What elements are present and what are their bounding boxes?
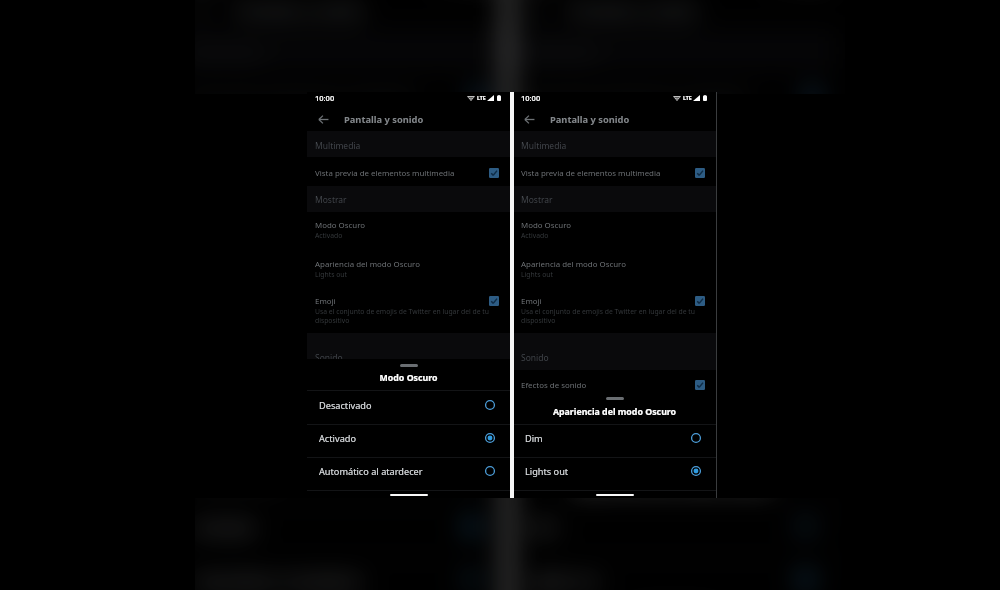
button[interactable]: Back — [314, 110, 332, 128]
button[interactable] — [513, 250, 716, 289]
button[interactable]: Activado — [307, 422, 510, 454]
staticText: Lights out — [521, 270, 553, 279]
staticText: Usa el conjunto de emojis de Twitter en … — [315, 307, 489, 325]
staticText: Efectos de sonido — [521, 380, 587, 391]
other: Enabled — [695, 296, 705, 306]
staticText: Pantalla y sonido — [550, 113, 630, 126]
staticText: Apariencia del modo Oscuro — [315, 259, 420, 270]
staticText: Dim — [528, 517, 797, 538]
other: Enabled — [489, 168, 499, 178]
staticText: Mostrar — [315, 194, 347, 206]
staticText: Lights out — [525, 465, 691, 478]
staticText: Activado — [195, 517, 464, 538]
button[interactable] — [513, 370, 716, 398]
staticText: Apariencia del modo Oscuro — [521, 259, 626, 270]
staticText: Efectos de sonido — [522, 433, 629, 450]
staticText: 10:00 — [315, 93, 335, 103]
staticText: Activado — [521, 231, 549, 240]
staticText: Modo Oscuro — [307, 372, 510, 384]
other: Enabled — [489, 296, 499, 306]
other: Enabled — [695, 168, 705, 178]
staticText: LTE — [683, 94, 692, 101]
staticText: Apariencia del modo Oscuro — [509, 475, 838, 494]
staticText: Activado — [522, 191, 567, 206]
button[interactable] — [513, 211, 716, 250]
staticText: Emoji — [315, 296, 336, 307]
staticText: Modo Oscuro — [521, 220, 572, 231]
staticText: 10:00 — [521, 93, 541, 103]
staticText: Dim — [525, 432, 691, 445]
staticText: Mostrar — [522, 131, 574, 151]
button[interactable] — [307, 289, 510, 333]
staticText: Pantalla y sonido — [344, 113, 424, 126]
staticText: Usa el conjunto de emojis de Twitter en … — [521, 307, 695, 325]
staticText: Multimedia — [315, 140, 361, 152]
staticText: Vista previa de elementos multimedia — [315, 168, 455, 179]
staticText: Emoji — [522, 297, 556, 314]
staticText: Activado — [319, 432, 485, 445]
button[interactable]: Automático al atardecer — [307, 455, 510, 487]
button[interactable]: Lights out — [513, 455, 716, 487]
staticText: Sonido — [315, 352, 343, 364]
staticText: Modo Oscuro — [175, 420, 504, 439]
staticText: Vista previa de elementos multimedia — [521, 168, 661, 179]
staticText: Vista previa de elementos multimedia — [522, 89, 749, 107]
button[interactable] — [307, 250, 510, 289]
button[interactable]: Desactivado — [307, 389, 510, 421]
staticText: Sonido — [521, 352, 549, 364]
staticText: Automático al atardecer — [195, 570, 464, 590]
staticText: Lights out — [528, 570, 797, 590]
staticText: Usa el conjunto de emojis de Twitter en … — [522, 314, 804, 344]
staticText: Usa el conjunto de emojis de Twitter en … — [188, 314, 470, 344]
button[interactable]: Dim — [513, 422, 716, 454]
staticText: Multimedia — [521, 140, 567, 152]
button[interactable] — [307, 211, 510, 250]
staticText: Vista previa de elementos multimedia — [188, 89, 415, 107]
button[interactable] — [513, 157, 716, 186]
button[interactable] — [513, 289, 716, 333]
staticText: Sonido — [522, 387, 567, 407]
other: Enabled — [695, 380, 705, 390]
staticText: Activado — [315, 231, 343, 240]
staticText: Apariencia del modo Oscuro — [513, 406, 716, 418]
staticText: Mostrar — [521, 194, 553, 206]
staticText: Desactivado — [195, 463, 464, 485]
button[interactable]: Back — [520, 110, 538, 128]
staticText: Modo Oscuro — [315, 220, 366, 231]
staticText: Lights out — [315, 270, 347, 279]
button[interactable] — [307, 157, 510, 186]
staticText: Emoji — [521, 296, 542, 307]
staticText: Automático al atardecer — [319, 465, 485, 478]
staticText: Lights out — [522, 254, 574, 269]
staticText: LTE — [477, 94, 486, 101]
staticText: Modo Oscuro — [522, 173, 605, 191]
staticText: Desactivado — [319, 399, 485, 412]
